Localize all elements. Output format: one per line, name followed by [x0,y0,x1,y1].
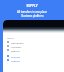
staticText: Business platform [21,14,44,18]
staticText: Transfers [11,45,22,48]
staticText: Dashboard [11,41,24,44]
staticText: Reports [11,49,20,52]
staticText: Support [11,59,21,62]
staticText: SUPPLY [26,4,38,8]
button[interactable]: Settings [3,54,64,58]
button[interactable]: Dashboard [3,40,64,44]
staticText: Menu [7,36,14,39]
staticText: Settings [11,55,21,58]
button[interactable]: Reports [3,48,64,52]
staticText: All transfers in one place [17,10,47,14]
button[interactable]: Transfers [3,44,64,48]
button[interactable]: Support [3,58,64,62]
